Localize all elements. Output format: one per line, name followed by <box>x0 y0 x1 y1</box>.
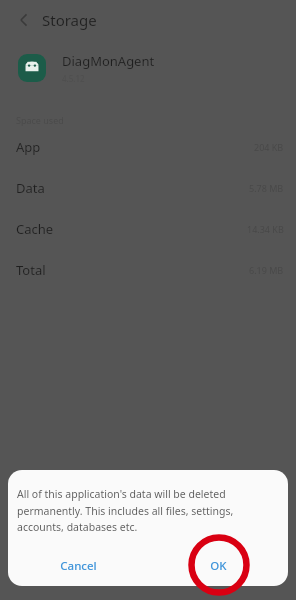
staticText: OK <box>210 558 227 574</box>
button[interactable]: Cancel <box>8 549 148 583</box>
staticText: 14.34 KB <box>247 223 284 235</box>
staticText: Cancel <box>60 558 97 574</box>
button[interactable]: Back <box>12 8 36 32</box>
button[interactable]: Total <box>0 249 296 290</box>
staticText: 204 KB <box>254 141 284 153</box>
staticText: App <box>16 138 41 156</box>
button[interactable]: DiagMonAgent <box>0 40 296 96</box>
staticText: Data <box>16 179 45 197</box>
staticText: 5.78 MB <box>249 182 284 194</box>
staticText: All of this application's data will be d… <box>17 487 276 534</box>
staticText: Cache <box>16 220 54 238</box>
staticText: Space used <box>16 114 64 126</box>
staticText: 6.19 MB <box>249 264 284 276</box>
button[interactable]: Cache <box>0 208 296 249</box>
button[interactable]: OK <box>148 549 288 583</box>
button[interactable]: Data <box>0 167 296 208</box>
staticText: Storage <box>42 10 97 30</box>
staticText: Total <box>16 261 46 279</box>
staticText: DiagMonAgent <box>62 52 155 70</box>
